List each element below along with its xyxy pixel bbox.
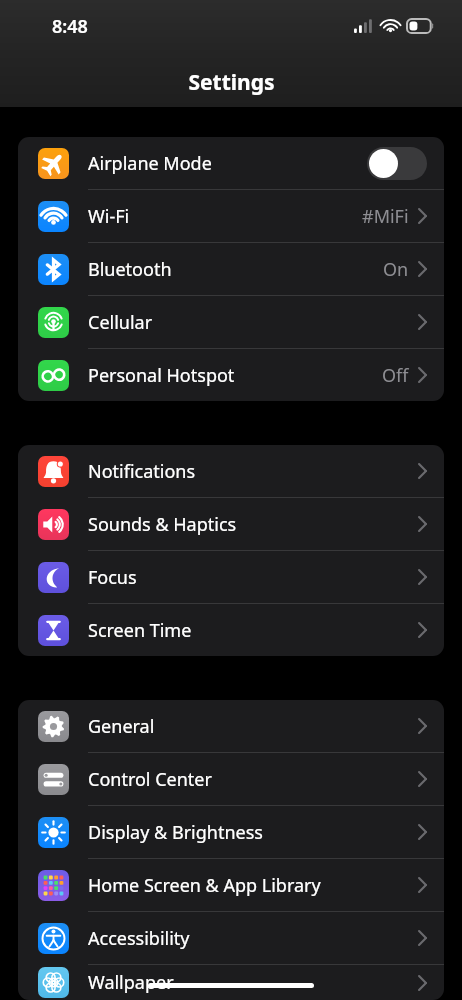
staticText: On (383, 257, 409, 282)
staticText: Display & Brightness (88, 820, 263, 845)
button[interactable]: Personal Hotspot (18, 349, 444, 401)
button[interactable]: Bluetooth (18, 243, 444, 296)
staticText: Cellular (88, 310, 153, 335)
staticText: Wi-Fi (88, 204, 130, 229)
staticText: Personal Hotspot (88, 363, 235, 388)
staticText: Settings (188, 68, 275, 97)
button[interactable]: Display & Brightness (18, 806, 444, 859)
button[interactable]: Wi-Fi (18, 190, 444, 243)
button[interactable]: Sounds & Haptics (18, 498, 444, 551)
staticText: Accessibility (88, 926, 190, 951)
button[interactable]: Screen Time (18, 604, 444, 656)
button[interactable]: Accessibility (18, 912, 444, 965)
staticText: Bluetooth (88, 257, 172, 282)
button[interactable]: Airplane Mode (18, 137, 444, 190)
staticText: Control Center (88, 767, 212, 792)
button[interactable]: General (18, 700, 444, 753)
staticText: Airplane Mode (88, 151, 212, 176)
button[interactable]: Home Screen & App Library (18, 859, 444, 912)
staticText: Home Screen & App Library (88, 873, 321, 898)
staticText: Sounds & Haptics (88, 512, 237, 537)
staticText: Wallpaper (88, 970, 174, 995)
staticText: Notifications (88, 459, 196, 484)
button[interactable]: Cellular (18, 296, 444, 349)
button[interactable]: Wallpaper (18, 965, 444, 1000)
button[interactable]: Focus (18, 551, 444, 604)
staticText: General (88, 714, 155, 739)
button[interactable]: Control Center (18, 753, 444, 806)
button[interactable]: Notifications (18, 445, 444, 498)
button[interactable]: Airplane Mode toggle (367, 147, 427, 180)
staticText: Focus (88, 565, 137, 590)
staticText: 8:48 (52, 14, 88, 39)
staticText: #MiFi (362, 204, 409, 229)
staticText: Screen Time (88, 618, 192, 643)
staticText: Off (382, 363, 409, 388)
